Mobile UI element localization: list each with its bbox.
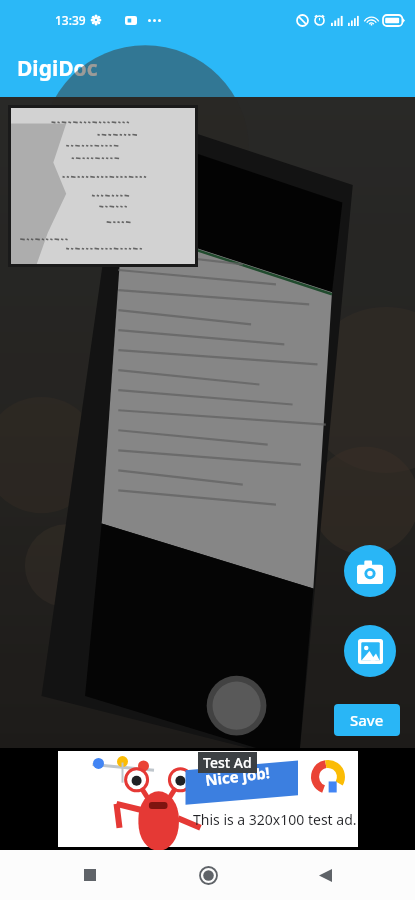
staticText: Nice job!: [204, 762, 271, 790]
staticText: DigiDoc: [17, 54, 98, 83]
button[interactable]: Pick from gallery: [344, 625, 396, 677]
button[interactable]: Recents: [62, 850, 118, 900]
staticText: 13:39: [55, 12, 86, 28]
staticText: This is a 320x100 test ad.: [193, 810, 357, 829]
button[interactable]: Nice job!: [58, 751, 358, 847]
button[interactable]: Home: [180, 850, 236, 900]
button[interactable]: Back: [297, 850, 353, 900]
staticText: Save: [350, 710, 384, 730]
button[interactable]: Take photo: [344, 545, 396, 597]
staticText: Test Ad: [203, 753, 252, 772]
button[interactable]: [11, 108, 195, 264]
button[interactable]: Save: [334, 704, 400, 736]
